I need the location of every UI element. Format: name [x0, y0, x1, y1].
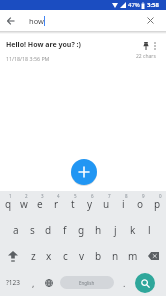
button[interactable]: g — [73, 217, 90, 243]
button[interactable]: r — [48, 191, 64, 217]
button[interactable] — [132, 269, 158, 296]
staticText: b — [95, 249, 102, 263]
staticText: n — [112, 249, 119, 263]
button[interactable]: e — [32, 191, 48, 217]
staticText: v — [79, 249, 85, 263]
button[interactable]: t — [64, 191, 81, 217]
button[interactable]: q — [0, 191, 16, 217]
staticText: 9 — [142, 193, 145, 199]
staticText: c — [63, 249, 68, 263]
button[interactable]: v — [73, 243, 90, 269]
staticText: . — [123, 277, 126, 289]
staticText: m — [128, 249, 138, 263]
staticText: l — [148, 223, 151, 237]
button[interactable]: w — [16, 191, 32, 217]
staticText: t — [71, 197, 75, 211]
button[interactable]: d — [40, 217, 56, 243]
button[interactable] — [71, 159, 97, 185]
staticText: u — [103, 197, 110, 211]
button[interactable]: s — [24, 217, 40, 243]
button[interactable]: n — [107, 243, 124, 269]
button[interactable]: b — [90, 243, 107, 269]
staticText: x — [46, 249, 52, 263]
button[interactable]: y — [81, 191, 98, 217]
button[interactable] — [0, 243, 25, 269]
button[interactable]: p — [149, 191, 166, 217]
button[interactable]: . — [117, 269, 132, 296]
button[interactable]: x — [41, 243, 57, 269]
staticText: , — [32, 277, 35, 289]
button[interactable] — [141, 243, 166, 269]
button[interactable] — [143, 42, 149, 50]
staticText: 7 — [108, 193, 111, 199]
staticText: 3 — [41, 193, 44, 199]
staticText: a — [13, 223, 19, 237]
staticText: 6 — [91, 193, 94, 199]
button[interactable]: ?123 — [0, 269, 26, 296]
staticText: English — [79, 280, 95, 286]
staticText: z — [31, 249, 36, 263]
staticText: p — [154, 197, 161, 211]
button[interactable] — [41, 269, 57, 296]
button[interactable]: f — [56, 217, 73, 243]
button[interactable]: k — [124, 217, 141, 243]
button[interactable] — [7, 17, 15, 25]
staticText: g — [78, 223, 85, 237]
button[interactable]: h — [90, 217, 107, 243]
staticText: k — [130, 223, 136, 237]
button[interactable]: l — [141, 217, 158, 243]
staticText: r — [54, 197, 59, 211]
button[interactable] — [147, 17, 154, 24]
staticText: 22 chars — [136, 53, 156, 60]
staticText: y — [87, 197, 93, 211]
staticText: e — [37, 197, 43, 211]
staticText: o — [137, 197, 144, 211]
staticText: 4 — [57, 193, 60, 199]
button[interactable]: u — [98, 191, 115, 217]
staticText: j — [114, 223, 117, 237]
staticText: Hello! How are you? :) — [6, 40, 81, 50]
staticText: d — [45, 223, 52, 237]
staticText: 3:58 — [147, 1, 159, 9]
staticText: i — [122, 197, 125, 211]
staticText: 11/18/18 3:56 PM — [6, 55, 50, 62]
button[interactable]: Hello! How are you? :) — [0, 34, 166, 63]
button[interactable]: a — [8, 217, 24, 243]
staticText: ?123 — [6, 278, 20, 287]
staticText: q — [5, 197, 12, 211]
staticText: f — [63, 223, 67, 237]
button[interactable]: English — [60, 269, 114, 296]
staticText: h — [95, 223, 102, 237]
staticText: 0 — [159, 193, 162, 199]
staticText: how — [29, 16, 44, 26]
button[interactable]: z — [25, 243, 41, 269]
staticText: w — [20, 197, 28, 211]
staticText: 8 — [125, 193, 128, 199]
staticText: 47% — [128, 1, 140, 9]
staticText: 1 — [9, 193, 12, 199]
button[interactable] — [154, 42, 156, 50]
button[interactable]: j — [107, 217, 124, 243]
button[interactable]: , — [26, 269, 41, 296]
staticText: 2 — [25, 193, 28, 199]
staticText: s — [30, 223, 35, 237]
staticText: 5 — [74, 193, 77, 199]
button[interactable]: i — [115, 191, 132, 217]
button[interactable]: o — [132, 191, 149, 217]
button[interactable]: c — [57, 243, 73, 269]
button[interactable]: m — [124, 243, 141, 269]
